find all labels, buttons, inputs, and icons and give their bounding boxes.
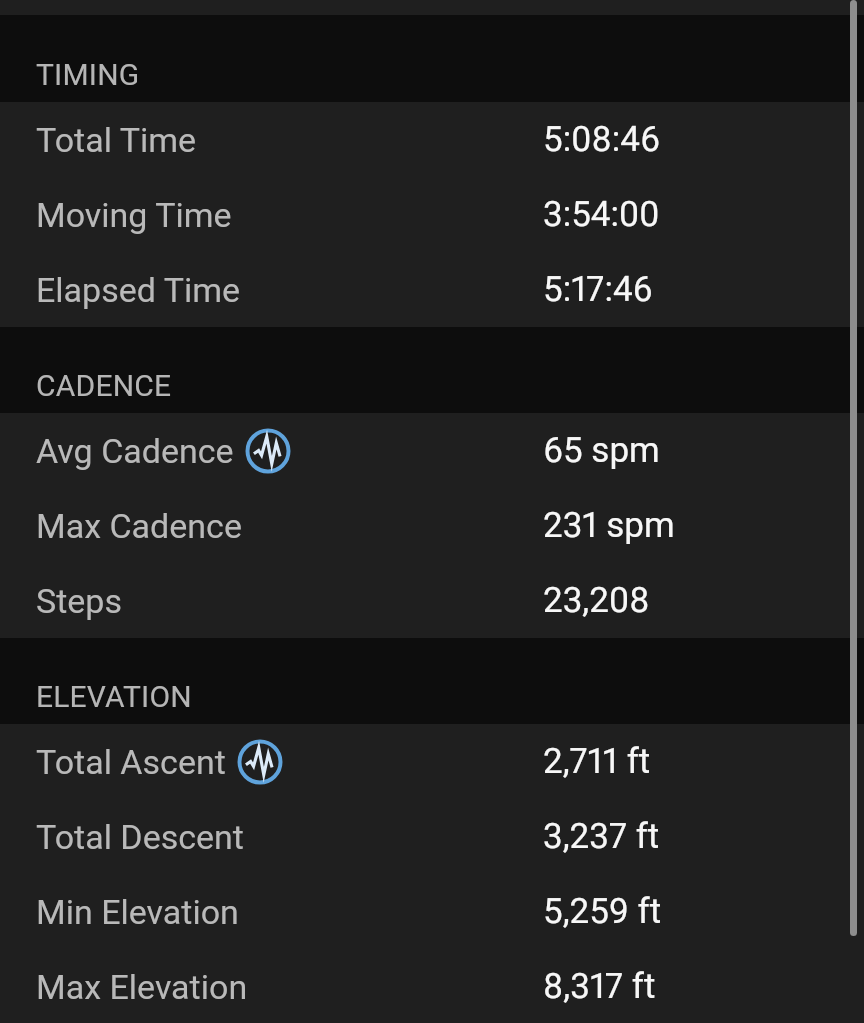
staticText: 3,237 ft xyxy=(543,816,660,857)
staticText: 5:17:46 xyxy=(543,269,653,310)
staticText: TIMING xyxy=(36,57,140,92)
staticText: 5,259 ft xyxy=(543,891,662,932)
staticText: Max Cadence xyxy=(36,506,242,546)
staticText: Max Elevation xyxy=(36,967,248,1007)
button[interactable]: Max Cadence xyxy=(0,488,864,563)
staticText: CADENCE xyxy=(36,368,172,403)
other: Sensor connected xyxy=(237,739,283,785)
staticText: 23,208 xyxy=(543,580,650,621)
button[interactable]: Total Descent xyxy=(0,799,864,874)
staticText: Total Time xyxy=(36,120,197,160)
button[interactable]: Min Elevation xyxy=(0,874,864,949)
staticText: Avg Cadence xyxy=(36,431,234,471)
button[interactable]: Max Elevation xyxy=(0,949,864,1023)
button[interactable]: Moving Time xyxy=(0,177,864,252)
staticText: 8,317 ft xyxy=(543,966,656,1007)
staticText: Min Elevation xyxy=(36,892,239,932)
button[interactable]: Total Time xyxy=(0,102,864,177)
button[interactable]: Total Ascent xyxy=(0,724,864,799)
button[interactable]: Elapsed Time xyxy=(0,252,864,327)
button[interactable]: Steps xyxy=(0,563,864,638)
staticText: ELEVATION xyxy=(36,679,192,714)
staticText: Moving Time xyxy=(36,195,232,235)
staticText: 231 spm xyxy=(543,505,675,546)
staticText: Elapsed Time xyxy=(36,270,241,310)
staticText: 5:08:46 xyxy=(543,119,661,160)
staticText: 2,711 ft xyxy=(543,741,651,782)
staticText: Total Descent xyxy=(36,817,244,857)
button[interactable]: Avg Cadence xyxy=(0,413,864,488)
staticText: Steps xyxy=(36,581,122,621)
staticText: Total Ascent xyxy=(36,742,226,782)
staticText: 3:54:00 xyxy=(543,194,660,235)
staticText: 65 spm xyxy=(543,430,660,471)
other: Sensor connected xyxy=(245,428,291,474)
